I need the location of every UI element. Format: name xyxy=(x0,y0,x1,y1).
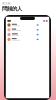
staticText: 問頻的人 xyxy=(2,5,22,12)
button[interactable]: Contact xyxy=(6,23,49,27)
button[interactable]: Contact xyxy=(6,37,49,42)
button[interactable]: Contact xyxy=(6,27,49,32)
staticText: 通訊錄 xyxy=(2,2,11,5)
button[interactable]: Contact xyxy=(6,32,49,37)
